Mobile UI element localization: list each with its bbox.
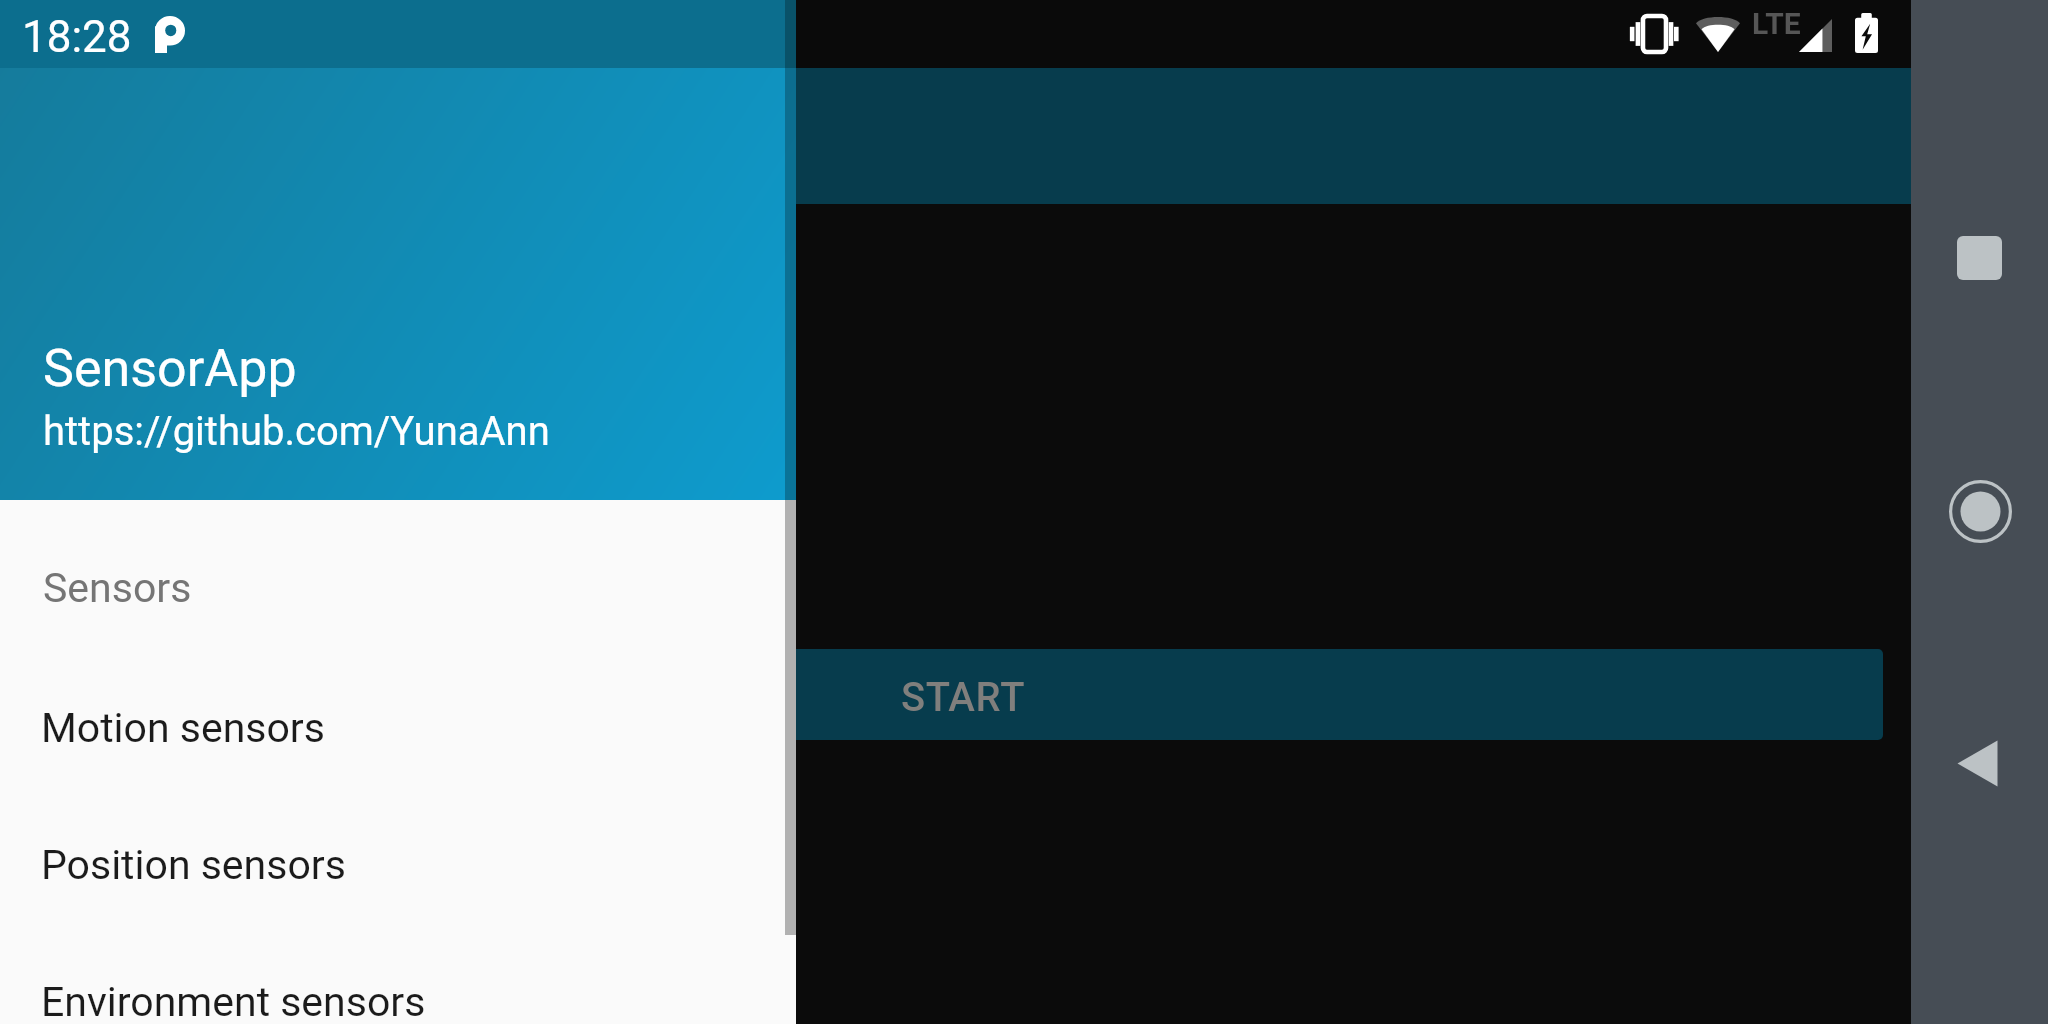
staticText: Sensors	[43, 564, 192, 612]
staticText: SensorApp	[43, 338, 297, 399]
button[interactable]: Recent apps	[1957, 236, 2002, 280]
staticText: Position sensors	[41, 841, 346, 889]
staticText: 18:28	[22, 11, 132, 63]
button[interactable]: Home	[1949, 480, 2012, 543]
button[interactable]: Position sensors	[0, 816, 785, 913]
button[interactable]: Environment sensors	[0, 953, 785, 1024]
staticText: Motion sensors	[41, 704, 325, 752]
button[interactable]: START	[0, 649, 1883, 740]
staticText: LTE	[1752, 6, 1801, 41]
button[interactable]: Back	[1956, 739, 1999, 788]
staticText: Environment sensors	[41, 978, 426, 1024]
staticText: https://github.com/YunaAnn	[43, 408, 550, 455]
button[interactable]: Motion sensors	[0, 679, 785, 776]
staticText: START	[901, 674, 1026, 721]
